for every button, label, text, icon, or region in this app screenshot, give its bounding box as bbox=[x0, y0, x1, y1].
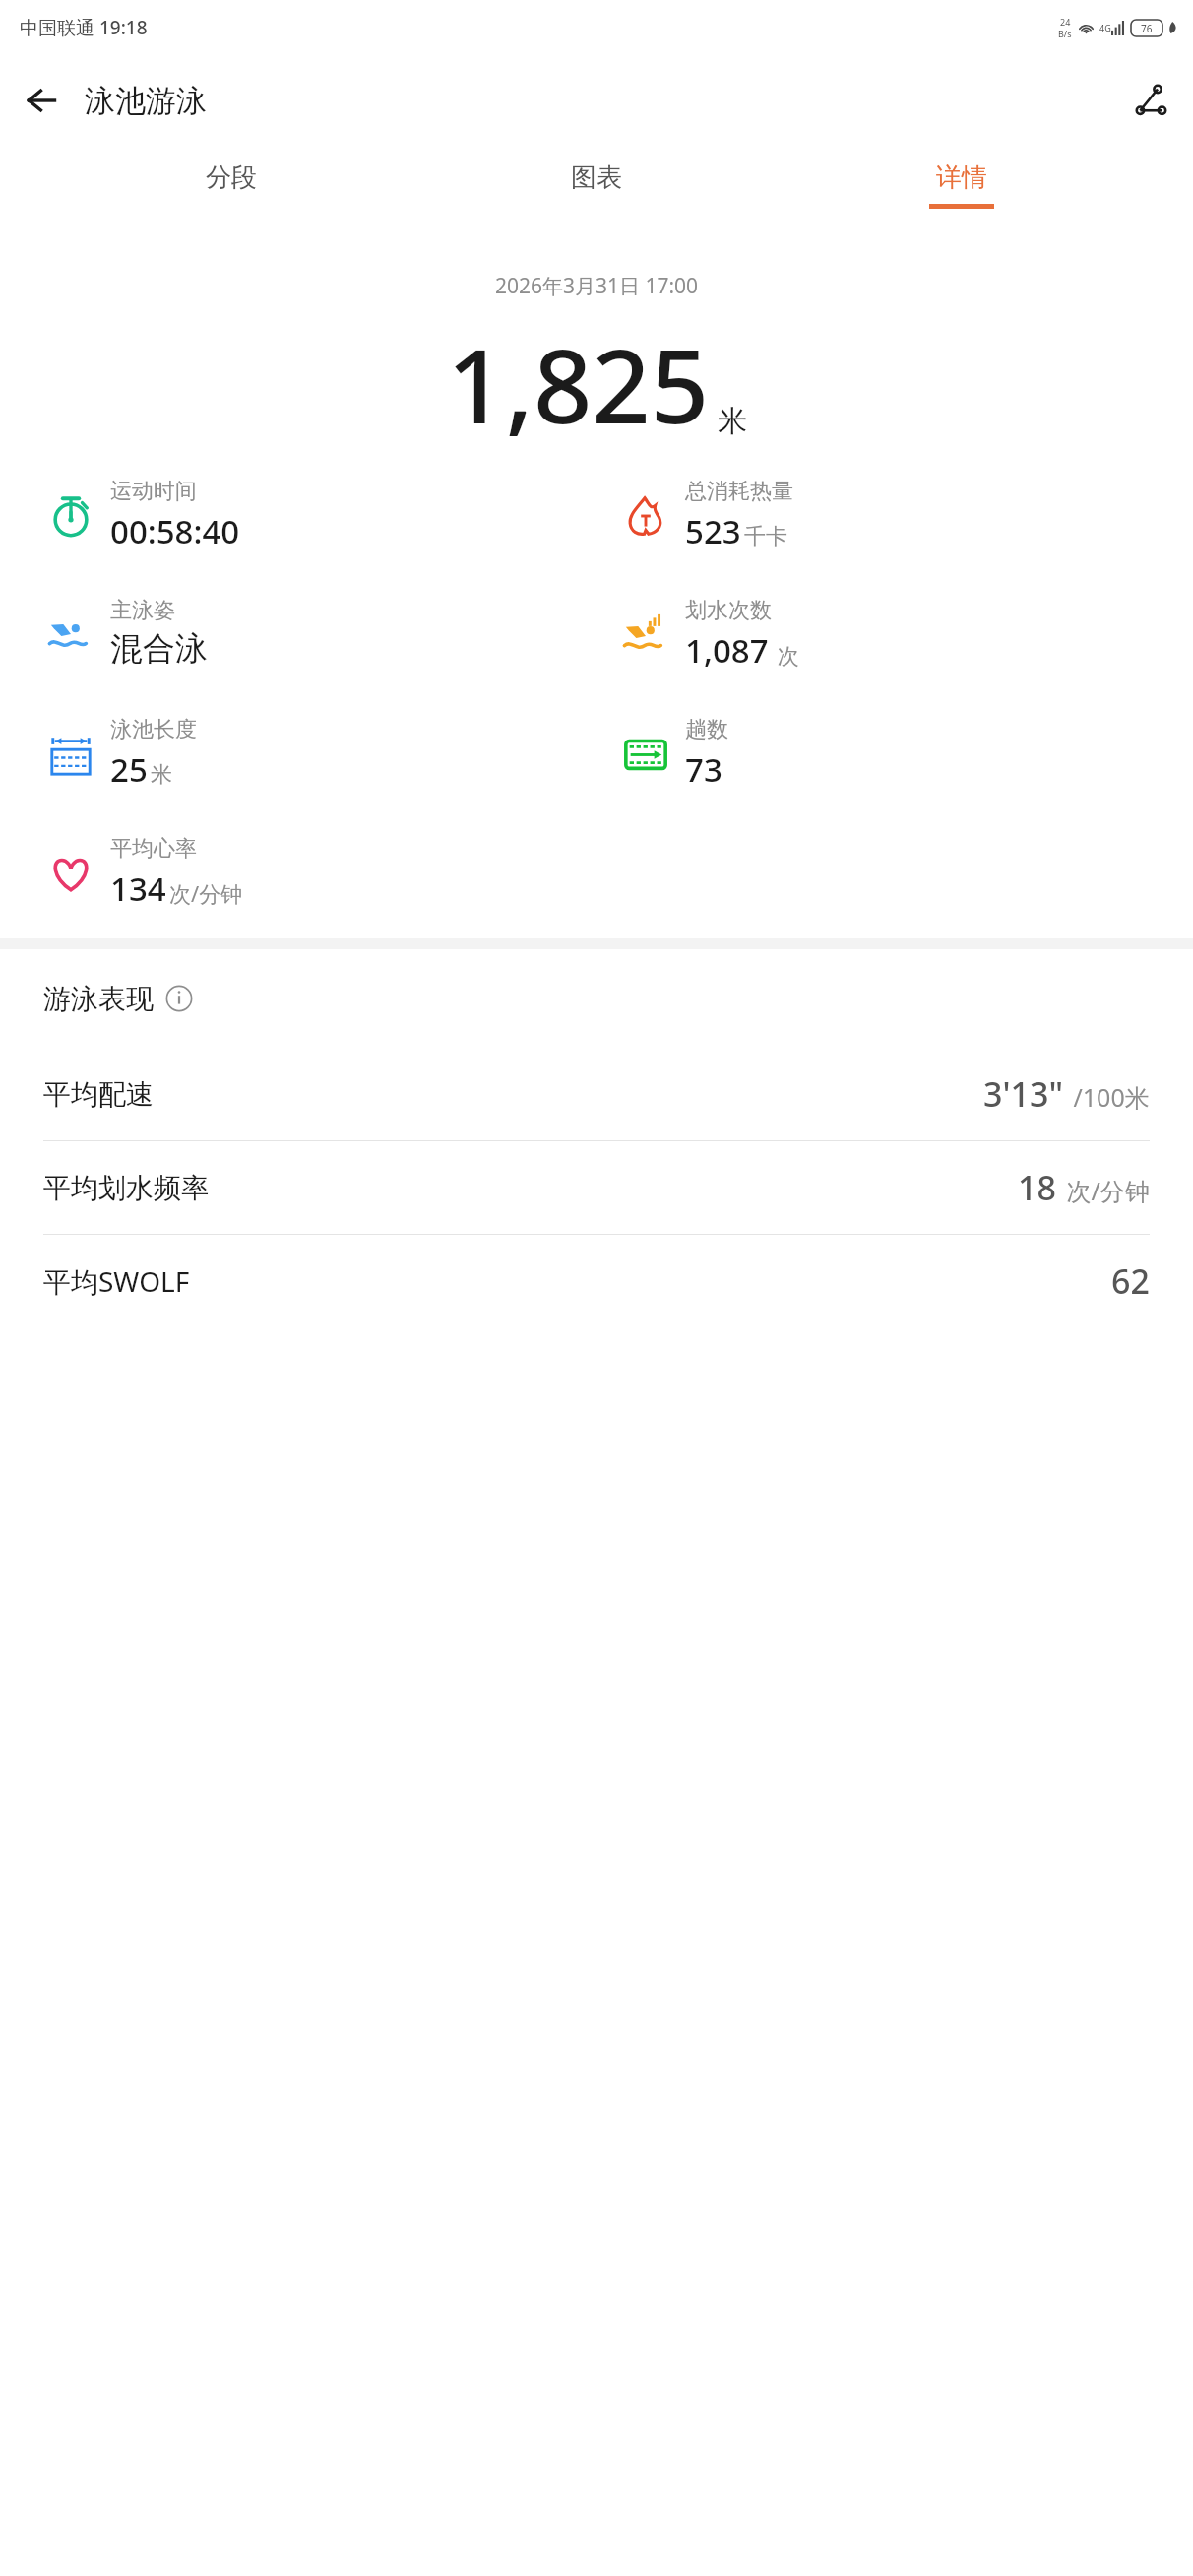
staticText: 2026年3月31日 17:00 bbox=[0, 272, 1193, 300]
button[interactable]: 运动时间 bbox=[43, 478, 596, 553]
button[interactable]: 平均划水频率 bbox=[0, 1141, 1193, 1234]
staticText: 运动时间 bbox=[110, 478, 197, 505]
staticText: 62 bbox=[1111, 1258, 1150, 1304]
button[interactable]: Share bbox=[1122, 72, 1179, 129]
button[interactable]: 平均配速 bbox=[0, 1048, 1193, 1140]
staticText: 134 bbox=[110, 867, 166, 911]
staticText: 划水次数 bbox=[685, 597, 772, 624]
button[interactable]: 平均SWOLF bbox=[0, 1235, 1193, 1327]
staticText: 1,087 bbox=[685, 628, 769, 673]
staticText: 游泳表现 bbox=[43, 982, 154, 1016]
staticText: 平均配速 bbox=[43, 1077, 154, 1112]
staticText: 523 bbox=[685, 509, 741, 553]
button[interactable]: 平均心率 bbox=[43, 835, 596, 911]
staticText: /100米 bbox=[1067, 1080, 1150, 1114]
staticText: 平均心率 bbox=[110, 835, 197, 863]
staticText: 分段 bbox=[206, 161, 257, 194]
staticText: 千卡 bbox=[744, 523, 787, 550]
staticText: 4G bbox=[1099, 22, 1111, 33]
staticText: 25 bbox=[110, 747, 148, 792]
staticText: 详情 bbox=[936, 161, 987, 194]
staticText: 73 bbox=[685, 747, 722, 792]
staticText: 泳池长度 bbox=[110, 716, 197, 743]
staticText: 中国联通 19:18 bbox=[20, 15, 148, 40]
button[interactable]: 图表 bbox=[542, 146, 651, 236]
button[interactable]: 划水次数 bbox=[618, 597, 1193, 673]
staticText: 米 bbox=[151, 761, 172, 789]
button[interactable]: Back bbox=[14, 73, 69, 128]
staticText: 3'13" bbox=[983, 1071, 1063, 1117]
staticText: B/s bbox=[1058, 28, 1072, 39]
button[interactable]: 详情 bbox=[908, 146, 1016, 236]
staticText: 1,825 bbox=[447, 314, 710, 454]
staticText: 主泳姿 bbox=[110, 597, 175, 624]
staticText: 次 bbox=[772, 640, 799, 670]
staticText: 混合泳 bbox=[110, 628, 208, 670]
staticText: 76 bbox=[1141, 22, 1153, 35]
staticText: 平均SWOLF bbox=[43, 1262, 190, 1300]
staticText: 18 bbox=[1018, 1165, 1056, 1210]
button[interactable]: Info bbox=[165, 985, 193, 1012]
button[interactable]: 主泳姿 bbox=[43, 597, 596, 670]
staticText: 泳池游泳 bbox=[85, 82, 207, 120]
staticText: 次/分钟 bbox=[169, 878, 243, 908]
button[interactable]: 泳池长度 bbox=[43, 716, 596, 792]
staticText: 总消耗热量 bbox=[685, 478, 793, 505]
staticText: 图表 bbox=[571, 161, 622, 194]
staticText: 00:58:40 bbox=[110, 509, 240, 553]
staticText: 24 bbox=[1060, 16, 1071, 28]
button[interactable]: 趟数 bbox=[618, 716, 1193, 792]
staticText: 趟数 bbox=[685, 716, 728, 743]
staticText: 平均划水频率 bbox=[43, 1171, 209, 1205]
staticText: 次/分钟 bbox=[1060, 1174, 1150, 1207]
button[interactable]: 分段 bbox=[177, 146, 285, 236]
staticText: 米 bbox=[718, 403, 747, 440]
button[interactable]: 总消耗热量 bbox=[618, 478, 1193, 553]
